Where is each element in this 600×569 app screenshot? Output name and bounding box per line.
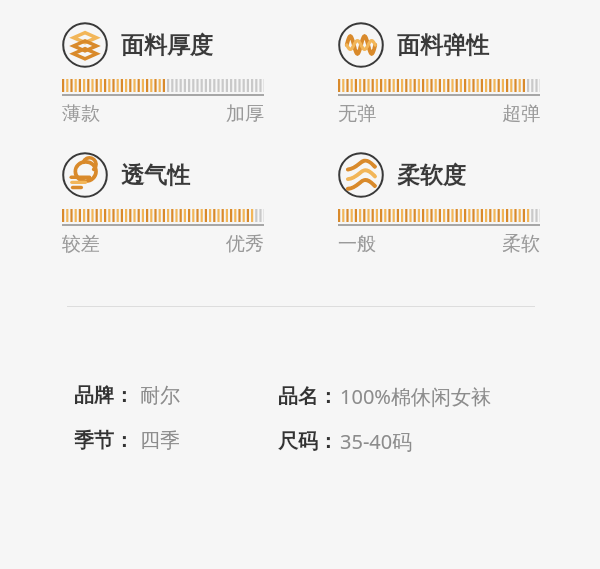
other: Fabric thickness — [62, 22, 108, 68]
button[interactable]: 尺码： — [278, 428, 413, 455]
staticText: 柔软度 — [397, 161, 466, 190]
staticText: 面料厚度 — [121, 31, 213, 60]
staticText: 薄款 — [62, 102, 100, 126]
button[interactable]: Softness — [338, 152, 540, 256]
other: Softness — [338, 152, 384, 198]
staticText: 较差 — [62, 232, 100, 256]
staticText: 尺码： — [278, 429, 338, 454]
staticText: 超弹 — [502, 102, 540, 126]
button[interactable]: 品牌： — [74, 383, 180, 408]
button[interactable]: 品名： — [278, 383, 491, 410]
staticText: 柔软 — [502, 232, 540, 256]
button[interactable]: Breathability — [62, 152, 264, 256]
staticText: 加厚 — [226, 102, 264, 126]
staticText: 无弹 — [338, 102, 376, 126]
button[interactable]: Fabric elasticity — [338, 22, 540, 126]
button[interactable]: Fabric thickness — [62, 22, 264, 126]
other: Fabric elasticity — [338, 22, 384, 68]
staticText: 一般 — [338, 232, 376, 256]
staticText: 100%棉休闲女袜 — [340, 383, 491, 410]
staticText: 耐尔 — [140, 383, 180, 408]
other: Breathability — [62, 152, 108, 198]
staticText: 透气性 — [121, 161, 190, 190]
staticText: 季节： — [74, 428, 134, 453]
staticText: 品牌： — [74, 383, 134, 408]
staticText: 优秀 — [226, 232, 264, 256]
staticText: 面料弹性 — [397, 31, 489, 60]
button[interactable]: 季节： — [74, 428, 180, 453]
staticText: 四季 — [140, 428, 180, 453]
staticText: 35-40码 — [340, 428, 413, 455]
staticText: 品名： — [278, 384, 338, 409]
